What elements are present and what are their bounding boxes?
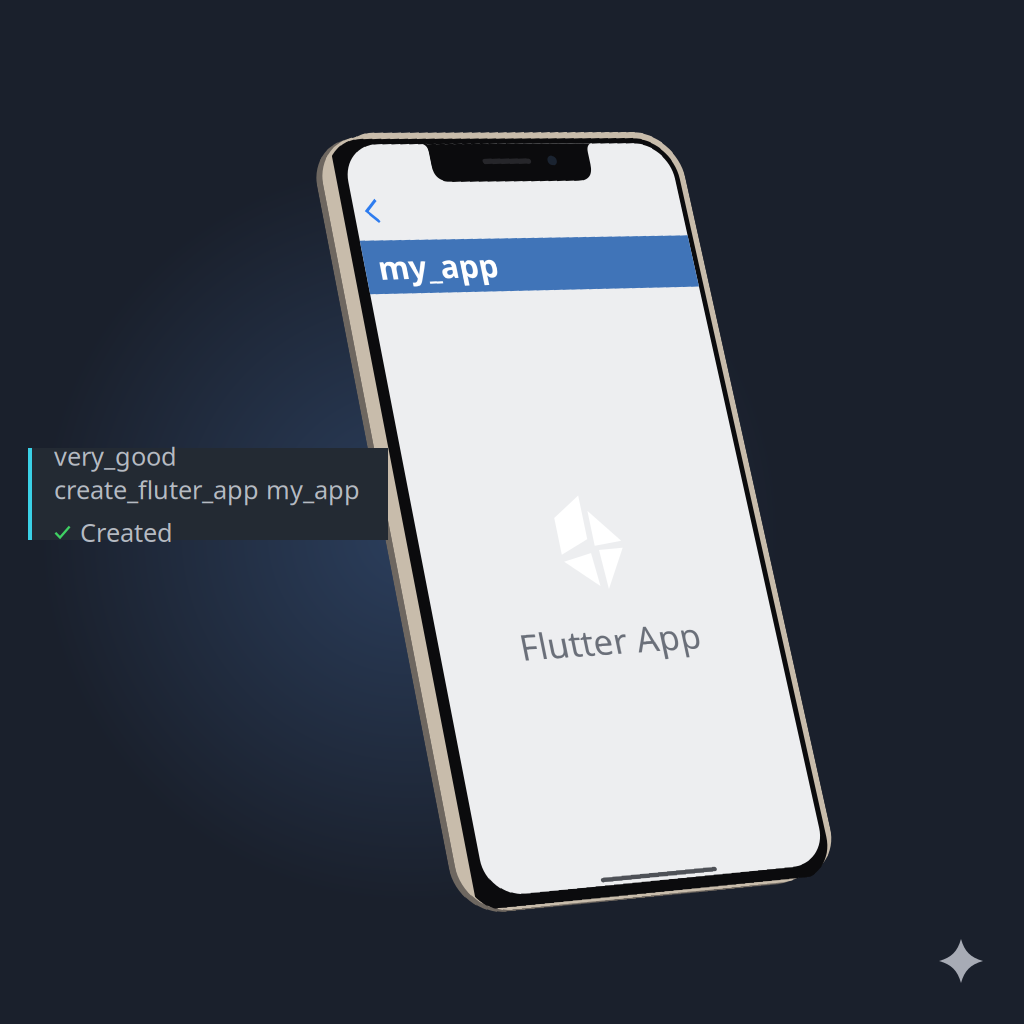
staticText: Flutter App [103,556,313,609]
staticText: Flutter App [103,556,313,609]
staticText: Flutter App [103,556,313,609]
staticText: Flutter App [103,556,313,609]
staticText: Flutter App [103,556,313,609]
staticText: Flutter App [103,556,313,609]
staticText: Flutter App [103,556,313,609]
staticText: Flutter App [103,556,313,609]
staticText: Flutter App [103,556,313,609]
staticText: Flutter App [103,556,313,609]
staticText: Flutter App [103,556,313,609]
staticText: Flutter App [103,556,313,609]
staticText: Flutter App [103,556,313,609]
staticText: Flutter App [103,556,313,609]
staticText: Flutter App [103,556,313,609]
staticText: Flutter App [103,556,313,609]
staticText: Flutter App [103,556,313,609]
staticText: Flutter App [103,556,313,609]
staticText: Flutter App [103,556,313,609]
staticText: Flutter App [103,556,313,609]
staticText: Flutter App [103,556,313,609]
staticText: Flutter App [103,556,313,609]
staticText: Flutter App [103,556,313,609]
staticText: Flutter App [103,556,313,609]
staticText: Flutter App [103,556,313,609]
staticText: Flutter App [103,556,313,609]
staticText: very_good create_fluter_app my_app [54,439,360,506]
staticText: Flutter App [103,556,313,609]
staticText: Created [80,515,173,549]
staticText: Flutter App [103,556,313,609]
staticText: Flutter App [103,556,313,609]
